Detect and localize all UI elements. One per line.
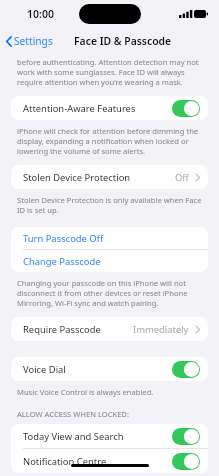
staticText: Notification Centre	[23, 455, 172, 468]
staticText: Immediately	[133, 323, 189, 336]
staticText: 10:00	[27, 7, 54, 21]
button[interactable]: Require Passcode	[11, 317, 208, 341]
button[interactable]: Voice Dial	[11, 357, 208, 381]
staticText: Music Voice Control is always enabled.	[17, 387, 154, 397]
staticText: Attention-Aware Features	[23, 102, 172, 115]
staticText: Changing your passcode on this iPhone wi…	[17, 278, 206, 308]
button[interactable]: Today View and Search	[11, 424, 208, 448]
button[interactable]: Today View and Search toggle, on	[172, 428, 200, 445]
button[interactable]: Stolen Device Protection	[11, 165, 208, 189]
staticText: Stolen Device Protection	[23, 171, 175, 184]
staticText: Voice Dial	[23, 363, 172, 376]
staticText: Turn Passcode Off	[23, 232, 104, 245]
button[interactable]: Turn Passcode Off	[11, 227, 208, 249]
button[interactable]: Attention-Aware Features toggle, on	[172, 100, 200, 117]
button[interactable]: Notification Centre toggle, on	[172, 453, 200, 470]
staticText: Change Passcode	[23, 255, 101, 268]
staticText: Settings	[14, 34, 53, 48]
button[interactable]: Settings	[0, 34, 57, 48]
staticText: iPhone will check for attention before d…	[17, 126, 206, 156]
staticText: ALLOW ACCESS WHEN LOCKED:	[17, 409, 129, 419]
staticText: before authenticating. Attention detecti…	[17, 57, 206, 87]
staticText: Today View and Search	[23, 430, 172, 443]
staticText: Stolen Device Protection is only availab…	[17, 195, 206, 215]
button[interactable]: Notification Centre	[11, 449, 208, 473]
button[interactable]: Change Passcode	[11, 250, 208, 272]
staticText: Require Passcode	[23, 323, 133, 336]
button[interactable]: Voice Dial toggle, on	[172, 361, 200, 378]
staticText: Off	[175, 171, 189, 184]
staticText: Face ID & Passcode	[74, 34, 172, 48]
button[interactable]: Attention-Aware Features	[11, 96, 208, 120]
